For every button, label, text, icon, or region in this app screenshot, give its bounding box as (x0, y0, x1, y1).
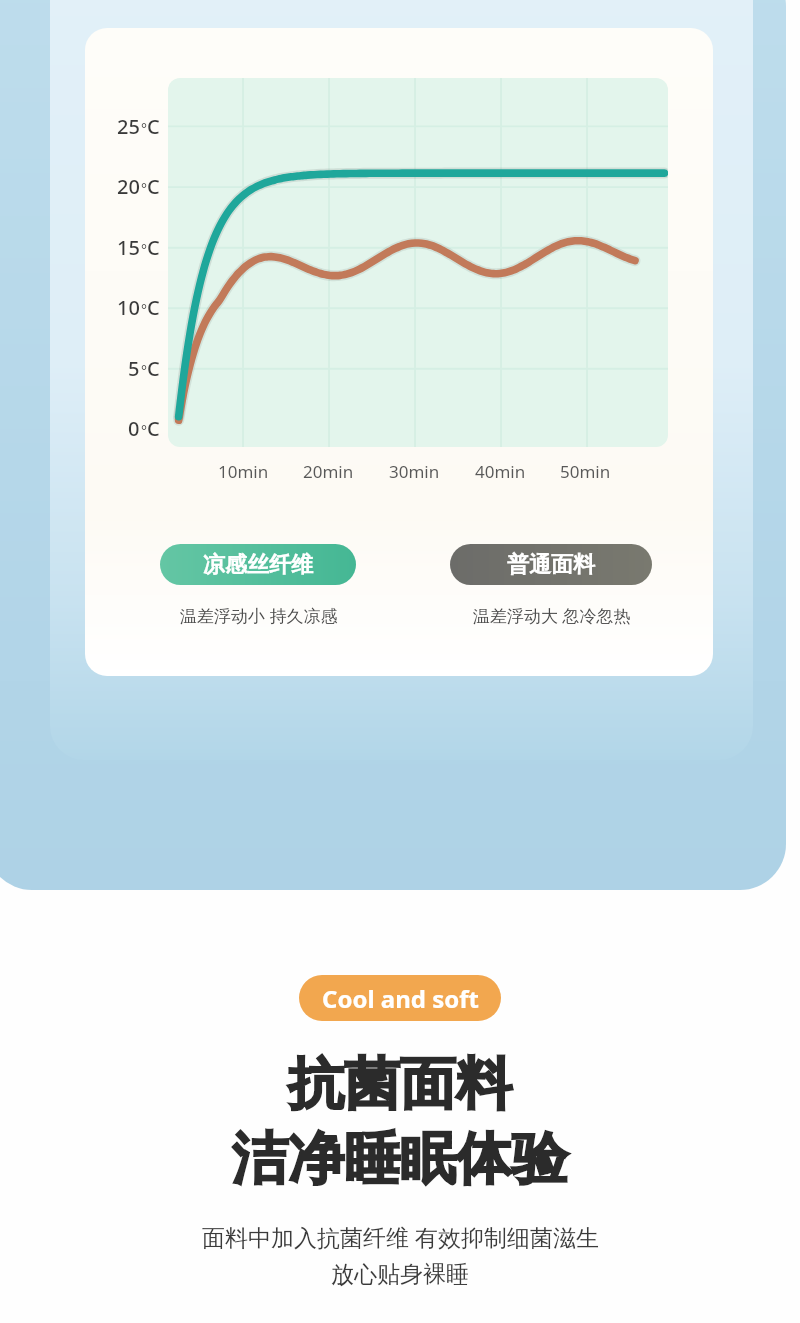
staticText: 40min (475, 460, 526, 483)
staticText: ° (141, 240, 147, 259)
staticText: C (147, 234, 160, 261)
staticText: 15 (117, 234, 140, 261)
staticText: 温差浮动小 持久凉感 (180, 604, 338, 627)
staticText: 普通面料 (507, 551, 595, 579)
staticText: ° (141, 300, 147, 319)
staticText: C (147, 173, 160, 200)
button[interactable]: 凉感丝纤维 (160, 544, 356, 585)
staticText: C (147, 355, 160, 382)
button[interactable]: Cool and soft (299, 975, 501, 1021)
staticText: 洁净睡眠体验 (232, 1124, 568, 1195)
staticText: 50min (560, 460, 611, 483)
staticText: 25 (117, 113, 140, 140)
staticText: 抗菌面料 (288, 1049, 512, 1120)
staticText: Cool and soft (322, 982, 479, 1015)
staticText: 凉感丝纤维 (203, 551, 313, 579)
staticText: C (147, 113, 160, 140)
staticText: C (147, 415, 160, 442)
staticText: ° (141, 179, 147, 198)
staticText: 放心贴身裸睡 (331, 1260, 469, 1289)
staticText: 10min (218, 460, 269, 483)
staticText: C (147, 294, 160, 321)
staticText: 0 (128, 415, 140, 442)
staticText: ° (141, 361, 147, 380)
staticText: ° (141, 119, 147, 138)
staticText: 温差浮动大 忽冷忽热 (473, 604, 631, 627)
staticText: 面料中加入抗菌纤维 有效抑制细菌滋生 (202, 1221, 599, 1252)
staticText: ° (141, 421, 147, 440)
staticText: 5 (128, 355, 140, 382)
button[interactable]: 普通面料 (450, 544, 652, 585)
staticText: 20 (117, 173, 140, 200)
staticText: 10 (117, 294, 140, 321)
staticText: 30min (389, 460, 440, 483)
staticText: 20min (303, 460, 354, 483)
